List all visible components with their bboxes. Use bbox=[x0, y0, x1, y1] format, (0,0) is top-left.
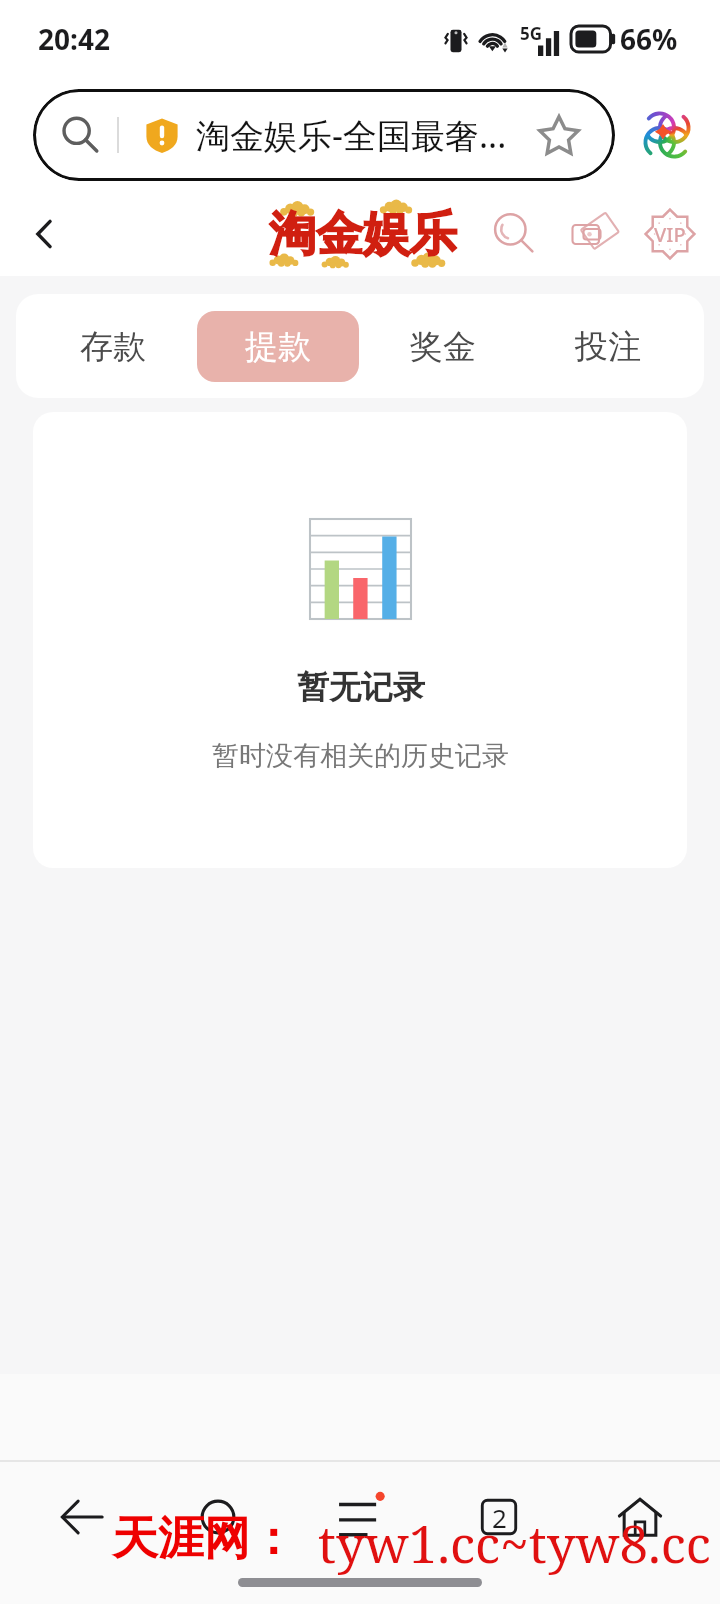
staticText: 淘金娱乐-全国最奢... bbox=[196, 112, 535, 158]
button[interactable]: 淘金娱乐-全国最奢... bbox=[33, 89, 615, 181]
button[interactable]: Search bbox=[486, 206, 542, 262]
staticText: 存款 bbox=[80, 326, 146, 368]
button[interactable]: Back bbox=[40, 1475, 124, 1559]
staticText: 暂无记录 bbox=[297, 667, 425, 707]
button[interactable]: 存款 bbox=[32, 311, 194, 382]
button[interactable]: Tabs: 2 open bbox=[457, 1475, 541, 1559]
staticText: 投注 bbox=[575, 326, 641, 368]
staticText: 奖金 bbox=[410, 326, 476, 368]
button[interactable]: 提款 bbox=[197, 311, 359, 382]
button[interactable]: 奖金 bbox=[362, 311, 524, 382]
staticText: 5G bbox=[520, 22, 543, 45]
staticText: VIP bbox=[654, 221, 686, 248]
button[interactable]: VIP bbox=[642, 206, 698, 262]
staticText: 提款 bbox=[245, 326, 311, 368]
button[interactable]: Voice search bbox=[176, 1475, 260, 1559]
staticText: 天涯网： bbox=[112, 1510, 296, 1568]
staticText: 暂时没有相关的历史记录 bbox=[212, 739, 509, 773]
button[interactable]: Back bbox=[18, 206, 74, 262]
button[interactable]: 投注 bbox=[527, 311, 689, 382]
staticText: 20:42 bbox=[38, 20, 110, 58]
button[interactable]: Wallet bbox=[564, 206, 620, 262]
staticText: tyw1.cc~tyw8.cc bbox=[318, 1508, 711, 1577]
staticText: 2 bbox=[492, 1500, 507, 1535]
button[interactable]: Home bbox=[598, 1475, 682, 1559]
button[interactable]: Menu bbox=[318, 1475, 402, 1559]
button[interactable]: Browser menu bbox=[636, 104, 698, 166]
staticText: 66% bbox=[620, 20, 678, 58]
staticText: 淘金娱乐 bbox=[269, 205, 457, 264]
